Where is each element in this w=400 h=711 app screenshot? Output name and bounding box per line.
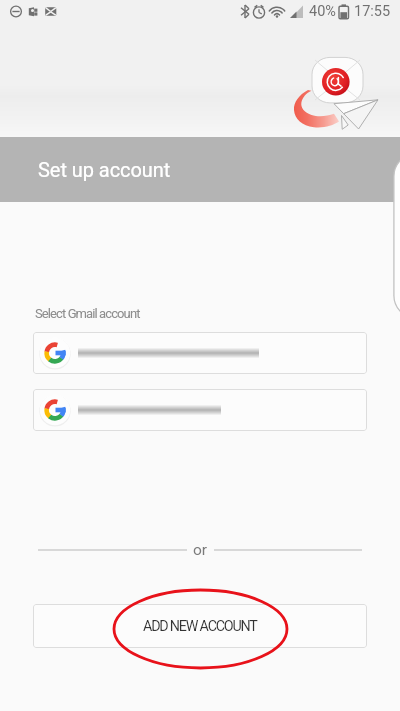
button[interactable] (33, 389, 367, 431)
staticText: Set up account (38, 158, 171, 181)
staticText: or (193, 541, 208, 559)
button[interactable] (33, 332, 367, 374)
staticText: ADD NEW ACCOUNT (143, 618, 257, 635)
staticText: Select Gmail account (35, 306, 140, 321)
staticText: 17:55 (354, 3, 391, 20)
button[interactable]: ADD NEW ACCOUNT (33, 604, 367, 648)
staticText: 40% (309, 3, 336, 20)
